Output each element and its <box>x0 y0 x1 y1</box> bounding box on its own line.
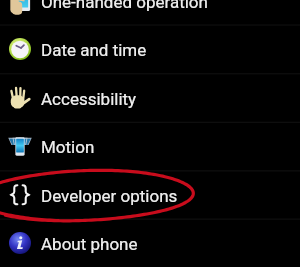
button[interactable]: Developer options <box>0 171 300 220</box>
staticText: One-handed operation <box>41 0 208 12</box>
button[interactable]: About phone <box>0 219 300 267</box>
staticText: Developer options <box>41 186 178 206</box>
staticText: Motion <box>41 137 95 157</box>
staticText: Date and time <box>41 40 147 60</box>
button[interactable]: Date and time <box>0 25 300 74</box>
button[interactable]: Motion <box>0 122 300 171</box>
button[interactable]: Accessibility <box>0 74 300 123</box>
staticText: About phone <box>41 234 138 254</box>
button[interactable]: One-handed operation <box>0 0 300 26</box>
other: Highlight Developer options <box>0 0 300 267</box>
staticText: Accessibility <box>41 89 137 109</box>
